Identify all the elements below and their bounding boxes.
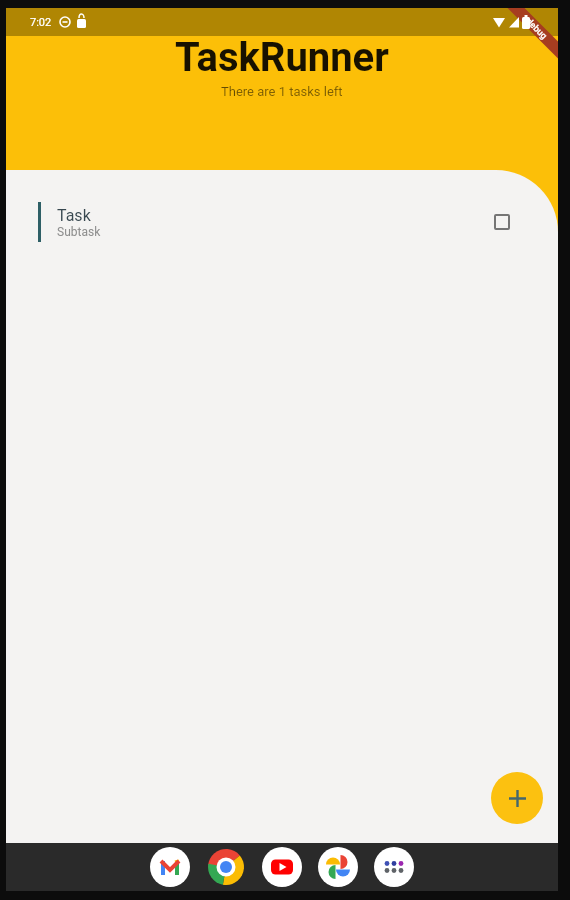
staticText: debug [524,16,550,42]
staticText: Subtask [57,225,101,239]
button[interactable] [150,847,190,887]
staticText: TaskRunner [175,34,389,81]
button[interactable] [374,847,414,887]
button[interactable]: Task [38,202,510,242]
button[interactable] [494,214,510,230]
staticText: Task [57,206,91,225]
button[interactable] [206,847,246,887]
staticText: There are 1 tasks left [221,84,343,99]
button[interactable] [491,772,543,824]
staticText: 7:02 [30,16,52,29]
button[interactable] [262,847,302,887]
button[interactable] [318,847,358,887]
